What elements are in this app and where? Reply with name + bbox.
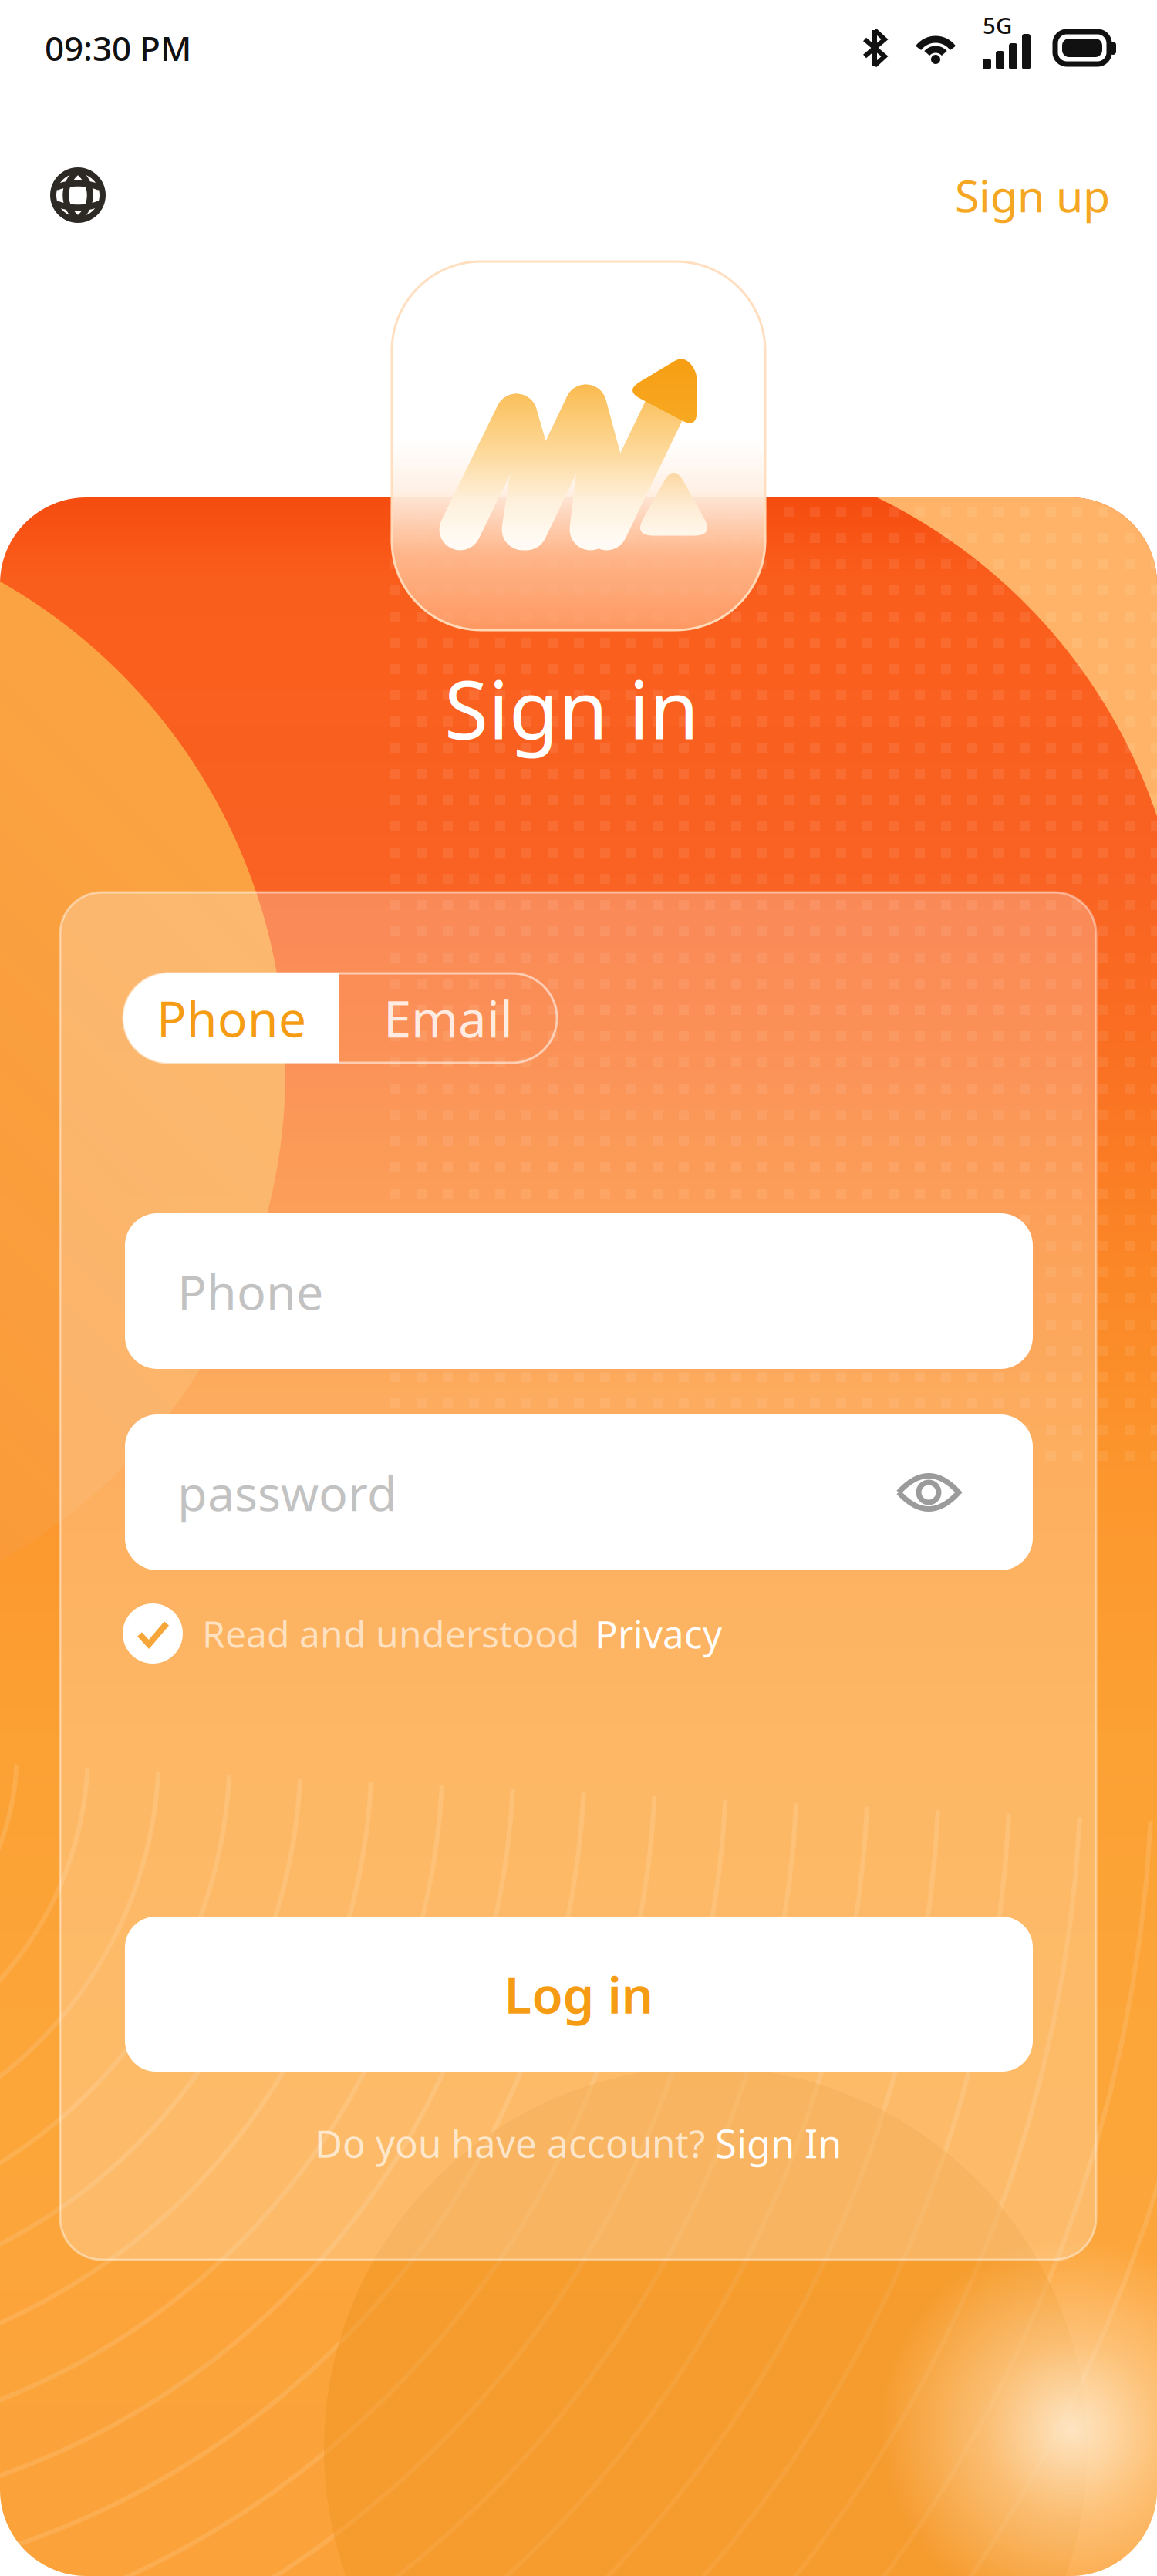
staticText: Email [383, 985, 513, 1052]
button[interactable]: Sign up [955, 159, 1110, 231]
staticText: Phone [177, 1259, 323, 1323]
staticText: 09:30 PM [45, 25, 191, 70]
staticText: Phone [157, 985, 306, 1051]
button[interactable]: Sign In [715, 2117, 842, 2169]
staticText: password [177, 1460, 397, 1524]
button[interactable]: Language [50, 167, 106, 223]
staticText: Sign up [955, 166, 1110, 224]
button[interactable]: Log in [125, 1917, 1033, 2072]
staticText: Log in [504, 1961, 654, 2028]
staticText: Do you have account? [315, 2118, 715, 2168]
staticText: Sign in [444, 655, 699, 761]
staticText: 5G [983, 10, 1012, 40]
staticText: Privacy [595, 1608, 722, 1659]
button[interactable]: Privacy [595, 1608, 722, 1659]
staticText: Read and understood [202, 1609, 580, 1658]
button[interactable]: Email [339, 973, 557, 1063]
button[interactable]: Agree to privacy policy [123, 1603, 183, 1664]
button[interactable]: Phone [123, 973, 339, 1063]
staticText: Sign In [715, 2117, 842, 2169]
